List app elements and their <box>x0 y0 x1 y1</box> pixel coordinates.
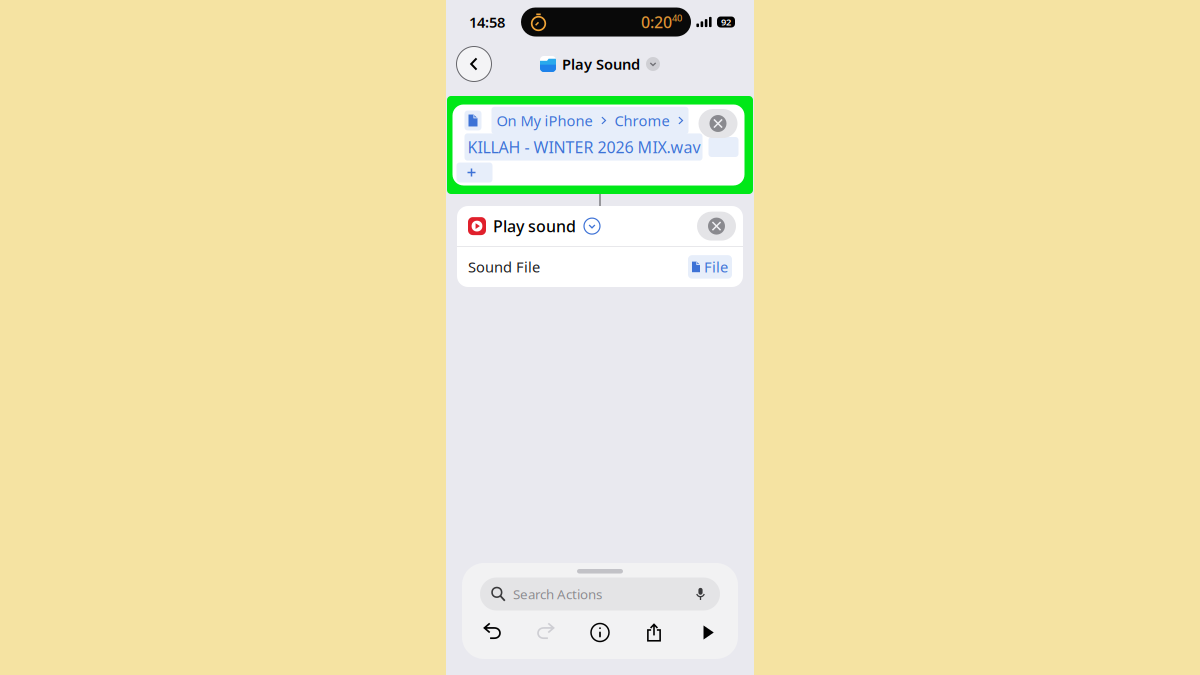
button[interactable]: Remove action <box>697 212 736 241</box>
button[interactable]: Redo <box>526 616 566 648</box>
button[interactable]: Undo <box>472 616 512 648</box>
button[interactable]: Remove <box>698 109 737 138</box>
staticText: KILLAH - WINTER 2026 MIX.wav <box>467 136 700 158</box>
staticText: 92 <box>721 16 731 28</box>
staticText: 0:20 <box>641 11 672 33</box>
button[interactable]: Back <box>456 46 492 82</box>
button[interactable]: Share <box>634 616 674 648</box>
button[interactable]: Run shortcut <box>688 616 728 648</box>
staticText: Chrome <box>614 111 669 130</box>
staticText: Play sound <box>493 215 576 237</box>
staticText: On My iPhone <box>496 111 592 130</box>
staticText: 40 <box>672 12 682 24</box>
staticText: File <box>704 257 728 277</box>
staticText: 14:58 <box>469 12 505 32</box>
button[interactable]: Sound File <box>457 247 743 287</box>
staticText: Search Actions <box>513 585 602 603</box>
button[interactable]: Play Sound <box>540 54 660 74</box>
button[interactable]: Add file <box>456 162 492 182</box>
staticText: Sound File <box>468 257 540 277</box>
button[interactable]: Dictate <box>693 586 708 601</box>
staticText: Play Sound <box>562 54 640 74</box>
button[interactable]: Info <box>580 616 620 648</box>
